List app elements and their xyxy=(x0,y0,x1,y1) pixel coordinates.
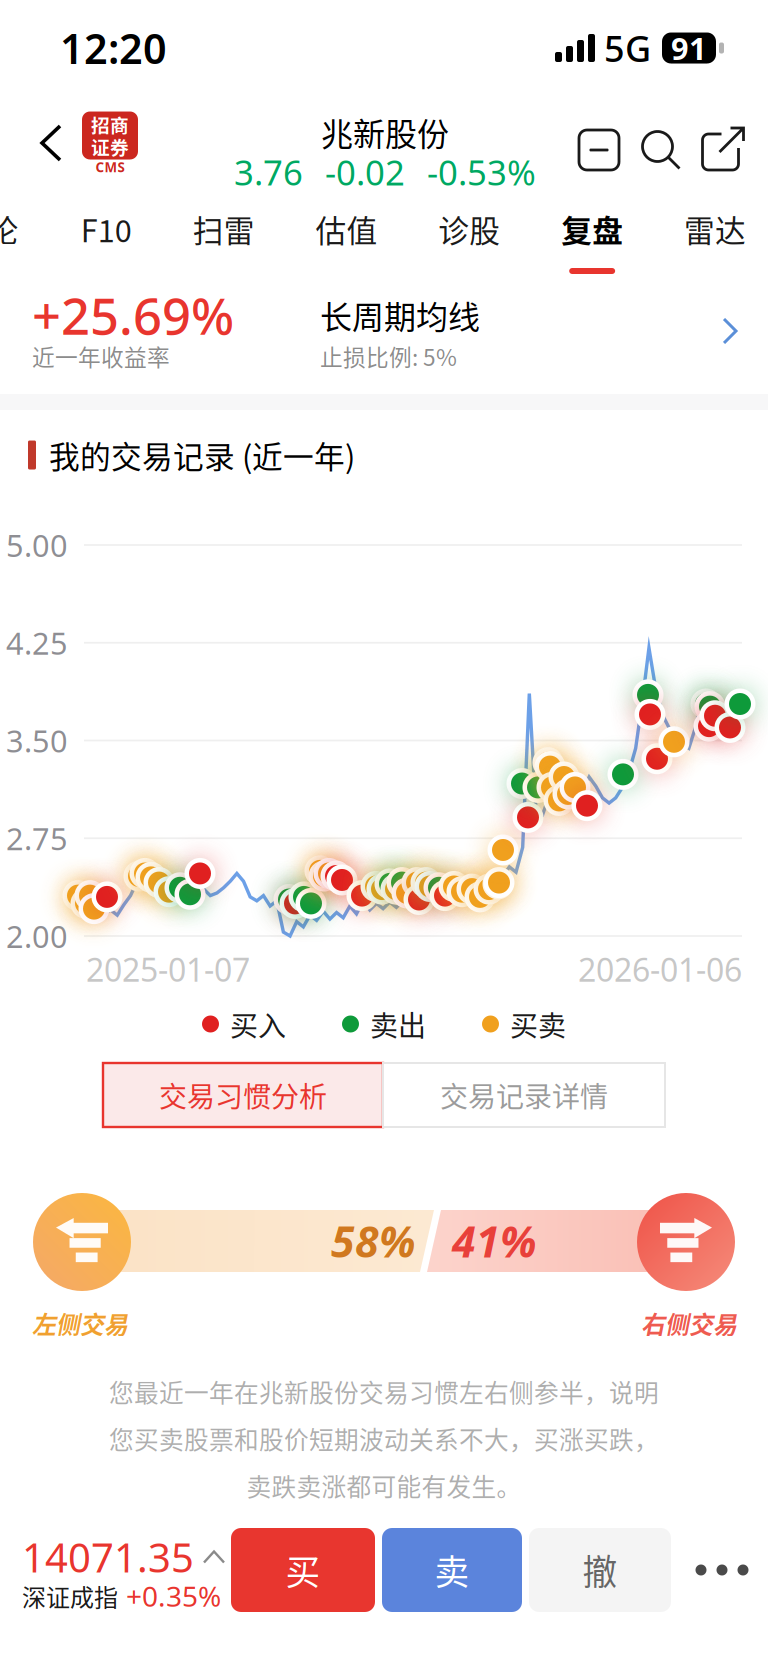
staticText: 近一年收益率 xyxy=(32,340,170,372)
staticText: 复盘 xyxy=(561,207,623,251)
staticText: 58% xyxy=(331,1213,416,1269)
staticText: 论 xyxy=(0,207,18,251)
button[interactable]: More xyxy=(679,1528,765,1612)
staticText: 证券 xyxy=(91,133,129,160)
staticText: 长周期均线 xyxy=(320,292,480,338)
button[interactable]: 卖 xyxy=(382,1528,522,1612)
staticText: 12:20 xyxy=(60,21,167,75)
staticText: +0.35% xyxy=(126,1577,221,1615)
staticText: 我的交易记录 (近一年) xyxy=(49,433,355,477)
staticText: 41% xyxy=(452,1213,537,1269)
button[interactable]: 交易习惯分析 xyxy=(103,1063,383,1127)
staticText: 买入 xyxy=(230,1004,286,1044)
staticText: -0.53% xyxy=(427,149,536,195)
staticText: 3.76 xyxy=(234,149,303,195)
button[interactable]: Search xyxy=(630,110,692,190)
button[interactable]: 估值 xyxy=(315,190,377,290)
staticText: 2.75 xyxy=(6,818,68,859)
button[interactable]: 雷达 xyxy=(684,190,746,290)
button[interactable]: 买 xyxy=(231,1528,375,1612)
staticText: 卖跌卖涨都可能有发生。 xyxy=(246,1468,521,1503)
staticText: -0.02 xyxy=(325,149,405,195)
staticText: 深证成指 xyxy=(22,1579,118,1613)
staticText: +25.69% xyxy=(32,281,234,349)
staticText: 2025-01-07 xyxy=(86,948,250,990)
staticText: 5.00 xyxy=(6,525,68,565)
button[interactable]: 交易记录详情 xyxy=(383,1063,665,1127)
staticText: 估值 xyxy=(315,207,377,251)
button[interactable]: 扫雷 xyxy=(193,190,255,290)
button[interactable]: Minimise xyxy=(568,110,630,190)
button[interactable]: 复盘 xyxy=(561,190,623,290)
staticText: 2026-01-06 xyxy=(578,948,742,990)
button[interactable]: F10 xyxy=(81,190,132,290)
staticText: 卖 xyxy=(434,1545,469,1595)
button[interactable]: 诊股 xyxy=(438,190,500,290)
staticText: 诊股 xyxy=(438,207,500,251)
button[interactable]: 撤 xyxy=(529,1528,671,1612)
staticText: 雷达 xyxy=(684,207,746,251)
button[interactable]: +25.69% xyxy=(0,290,768,394)
button[interactable]: 论 xyxy=(0,190,26,290)
staticText: 5G xyxy=(604,24,651,72)
staticText: 卖出 xyxy=(370,1004,426,1044)
staticText: 买卖 xyxy=(510,1004,566,1044)
staticText: 买 xyxy=(285,1545,320,1595)
staticText: 兆新股份 xyxy=(321,109,449,155)
staticText: 4.25 xyxy=(6,622,68,663)
staticText: 您买卖股票和股价短期波动关系不大，买涨买跌， xyxy=(109,1421,659,1456)
button[interactable]: Back xyxy=(14,96,88,190)
staticText: 91 xyxy=(671,28,707,68)
staticText: 左侧交易 xyxy=(32,1306,128,1340)
staticText: 14071.35 xyxy=(22,1530,194,1583)
staticText: 交易记录详情 xyxy=(440,1075,608,1115)
staticText: 招商 xyxy=(91,111,129,138)
staticText: F10 xyxy=(81,207,132,251)
staticText: 右侧交易 xyxy=(641,1306,737,1340)
staticText: 交易习惯分析 xyxy=(159,1075,327,1115)
staticText: 扫雷 xyxy=(193,207,255,251)
staticText: 止损比例: 5% xyxy=(320,340,457,372)
staticText: 2.00 xyxy=(6,916,68,956)
button[interactable]: Share xyxy=(692,110,754,190)
staticText: 您最近一年在兆新股份交易习惯左右侧参半，说明 xyxy=(109,1374,659,1409)
staticText: 3.50 xyxy=(6,720,68,761)
button[interactable]: Broker home xyxy=(74,96,146,190)
staticText: CMS xyxy=(95,158,124,176)
staticText: 撤 xyxy=(582,1545,617,1595)
